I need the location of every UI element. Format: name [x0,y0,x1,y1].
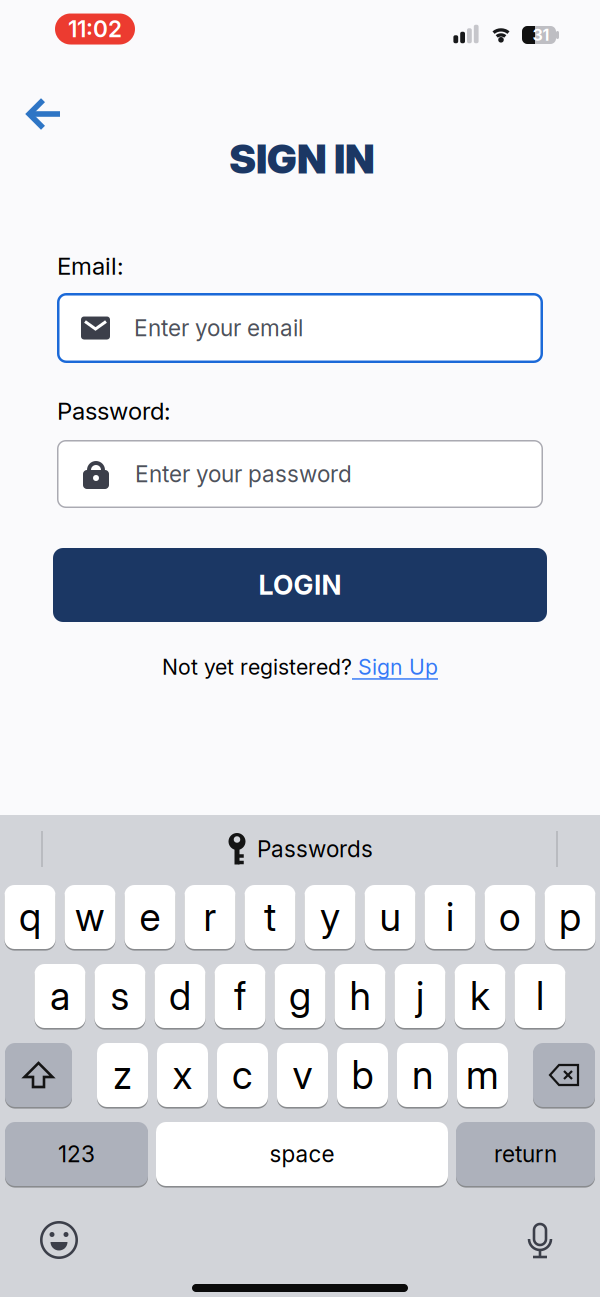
staticText: Sign Up [352,654,438,680]
button[interactable]: e [124,885,175,949]
staticText: x [172,1052,192,1098]
button[interactable]: LOGIN [53,548,547,622]
staticText: h [349,973,370,1019]
button[interactable]: u [364,885,415,949]
staticText: c [232,1052,253,1098]
button[interactable]: o [484,885,535,949]
button[interactable]: space [156,1122,448,1186]
staticText: g [289,973,311,1019]
button[interactable]: p [544,885,595,949]
staticText: 123 [58,1141,95,1167]
staticText: SIGN IN [229,135,375,183]
button[interactable]: q [4,885,55,949]
staticText: m [466,1052,499,1098]
button[interactable]: y [304,885,355,949]
button[interactable]: 123 [5,1122,148,1186]
staticText: j [416,973,424,1019]
staticText: n [412,1052,433,1098]
staticText: a [50,973,70,1019]
staticText: Not yet registered? [162,654,352,680]
staticText: z [113,1052,132,1098]
staticText: o [499,894,521,940]
staticText: y [320,894,340,940]
staticText: d [169,973,191,1019]
staticText: u [379,894,400,940]
staticText: q [19,894,41,940]
button[interactable] [523,1218,557,1262]
staticText: w [75,894,105,940]
button[interactable] [533,1043,595,1107]
button[interactable]: f [214,964,265,1028]
button[interactable] [38,1219,80,1261]
button[interactable]: l [514,964,565,1028]
staticText: Password: [57,397,171,425]
button[interactable]: Enter your email [57,293,543,363]
staticText: f [234,973,246,1019]
button[interactable]: k [454,964,505,1028]
staticText: return [494,1141,557,1167]
staticText: t [264,894,276,940]
button[interactable]: 11:02 [55,13,135,44]
button[interactable] [5,1043,72,1107]
button[interactable]: a [34,964,85,1028]
staticText: Enter your password [135,461,352,487]
staticText: s [110,973,129,1019]
staticText: Email: [57,252,124,280]
button[interactable]: t [244,885,295,949]
button[interactable]: r [184,885,235,949]
button[interactable]: h [334,964,385,1028]
button[interactable] [26,97,62,131]
staticText: k [470,973,490,1019]
button[interactable]: m [457,1043,508,1107]
staticText: LOGIN [258,569,341,601]
staticText: l [536,973,544,1019]
button[interactable]: z [97,1043,148,1107]
staticText: e [139,894,160,940]
button[interactable]: Enter your password [57,440,543,508]
button[interactable]: Passwords [227,833,373,865]
staticText: i [446,894,454,940]
button[interactable]: d [154,964,205,1028]
button[interactable]: c [217,1043,268,1107]
staticText: 31 [532,26,549,44]
staticText: Enter your email [134,315,303,341]
staticText: 11:02 [68,16,122,42]
button[interactable]: i [424,885,475,949]
button[interactable]: g [274,964,325,1028]
staticText: r [203,894,216,940]
button[interactable]: Sign Up [352,654,438,680]
button[interactable]: s [94,964,145,1028]
button[interactable]: return [456,1122,595,1186]
button[interactable]: n [397,1043,448,1107]
button[interactable]: v [277,1043,328,1107]
button[interactable]: x [157,1043,208,1107]
button[interactable]: w [64,885,115,949]
staticText: p [559,894,581,940]
button[interactable]: j [394,964,445,1028]
staticText: v [292,1052,312,1098]
staticText: Passwords [257,836,373,862]
staticText: space [269,1141,334,1167]
staticText: b [351,1052,373,1098]
button[interactable]: b [337,1043,388,1107]
